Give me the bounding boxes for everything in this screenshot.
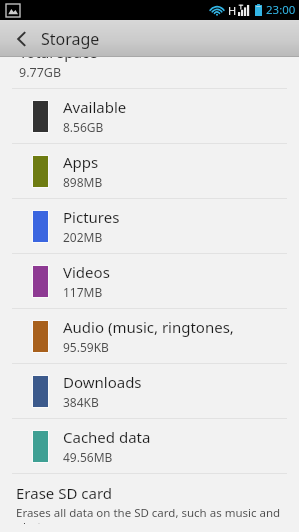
staticText: 202MB — [63, 229, 103, 245]
staticText: 23:00 — [266, 2, 296, 18]
staticText: 117MB — [63, 284, 103, 300]
staticText: Erase SD card — [16, 483, 113, 503]
button[interactable]: Back — [13, 28, 31, 50]
staticText: Available — [63, 97, 127, 117]
staticText: Storage — [41, 28, 100, 50]
staticText: 9.77GB — [19, 64, 62, 81]
staticText: Cached data — [63, 427, 151, 447]
button[interactable]: Downloads — [0, 364, 299, 418]
button[interactable]: Audio (music, ringtones, podcasts) — [0, 309, 299, 363]
staticText: Apps — [63, 152, 99, 172]
button[interactable]: Apps — [0, 144, 299, 198]
staticText: 898MB — [63, 174, 103, 190]
staticText: 95.59KB — [63, 339, 109, 355]
staticText: 49.56MB — [63, 449, 113, 465]
staticText: 384KB — [63, 394, 99, 410]
button[interactable]: Back — [0, 20, 299, 57]
button[interactable]: Pictures — [0, 199, 299, 253]
staticText: H — [228, 3, 237, 18]
staticText: Total space — [19, 42, 98, 62]
staticText: Erases all data on the SD card, such as … — [16, 505, 285, 524]
button[interactable]: Videos — [0, 254, 299, 308]
button[interactable]: Cached data — [0, 419, 299, 473]
staticText: 8.56GB — [63, 119, 104, 135]
staticText: Pictures — [63, 207, 120, 227]
staticText: Downloads — [63, 372, 142, 392]
button[interactable]: Available — [0, 89, 299, 143]
staticText: Videos — [63, 262, 110, 282]
staticText: Audio (music, ringtones, podcasts) — [63, 317, 295, 337]
button[interactable]: Erase SD card — [0, 474, 299, 532]
